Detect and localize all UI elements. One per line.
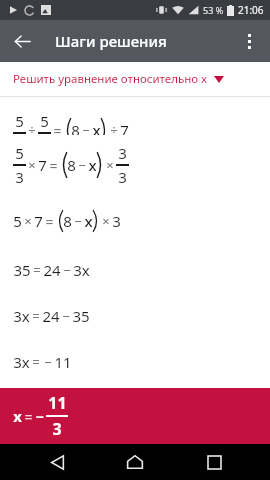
staticText: 3 bbox=[52, 418, 62, 440]
button[interactable]: Home bbox=[113, 444, 157, 480]
button[interactable]: Back bbox=[4, 23, 40, 59]
staticText: 35 bbox=[13, 260, 31, 280]
staticText: 53 % bbox=[203, 4, 224, 16]
staticText: 3x bbox=[13, 306, 30, 326]
button[interactable]: More options bbox=[231, 23, 267, 59]
staticText: − bbox=[63, 261, 71, 279]
staticText: ÷ bbox=[28, 121, 36, 135]
staticText: 7 bbox=[34, 211, 43, 231]
staticText: − bbox=[62, 307, 70, 325]
staticText: Решить уравнение относительно x bbox=[13, 71, 208, 87]
staticText: Шаги решения bbox=[55, 31, 167, 51]
staticText: 8 bbox=[63, 211, 72, 231]
staticText: = bbox=[53, 121, 62, 135]
staticText: 3 bbox=[118, 143, 127, 163]
staticText: × bbox=[24, 212, 32, 230]
staticText: − bbox=[44, 353, 52, 371]
staticText: 21:06 bbox=[238, 3, 264, 17]
button[interactable]: Recent apps bbox=[192, 444, 236, 480]
staticText: = bbox=[45, 212, 54, 231]
staticText: x bbox=[13, 406, 22, 426]
staticText: 5 bbox=[40, 111, 49, 131]
staticText: 5 bbox=[15, 143, 24, 163]
staticText: 5 bbox=[13, 211, 22, 231]
staticText: = bbox=[24, 407, 33, 426]
staticText: = bbox=[49, 156, 58, 175]
staticText: 35 bbox=[72, 306, 90, 326]
staticText: − bbox=[35, 407, 44, 426]
staticText: 7 bbox=[38, 155, 47, 175]
staticText: 3 bbox=[112, 211, 121, 231]
staticText: x bbox=[88, 155, 97, 175]
staticText: 3x bbox=[13, 352, 30, 372]
button[interactable]: Back bbox=[35, 444, 79, 480]
staticText: 3x bbox=[73, 260, 90, 280]
staticText: x bbox=[92, 120, 101, 135]
staticText: 3 bbox=[15, 167, 24, 187]
staticText: × bbox=[102, 212, 110, 230]
button[interactable]: x bbox=[0, 388, 270, 444]
staticText: 8 bbox=[67, 155, 76, 175]
button[interactable]: Решить уравнение относительно x bbox=[0, 62, 270, 96]
staticText: ÷ bbox=[110, 121, 118, 135]
staticText: − bbox=[74, 212, 82, 230]
staticText: − bbox=[78, 156, 86, 174]
staticText: − bbox=[82, 121, 90, 135]
staticText: × bbox=[106, 156, 114, 174]
staticText: 11 bbox=[54, 352, 72, 372]
staticText: × bbox=[28, 156, 36, 174]
staticText: 5 bbox=[15, 111, 24, 131]
staticText: 24 bbox=[42, 306, 60, 326]
staticText: 7 bbox=[120, 120, 129, 135]
staticText: 8 bbox=[71, 120, 80, 135]
staticText: = bbox=[32, 307, 40, 325]
staticText: = bbox=[33, 261, 41, 279]
staticText: 24 bbox=[43, 260, 61, 280]
staticText: 3 bbox=[118, 167, 127, 187]
staticText: x bbox=[84, 211, 93, 231]
staticText: = bbox=[32, 353, 40, 371]
staticText: 11 bbox=[48, 392, 67, 414]
